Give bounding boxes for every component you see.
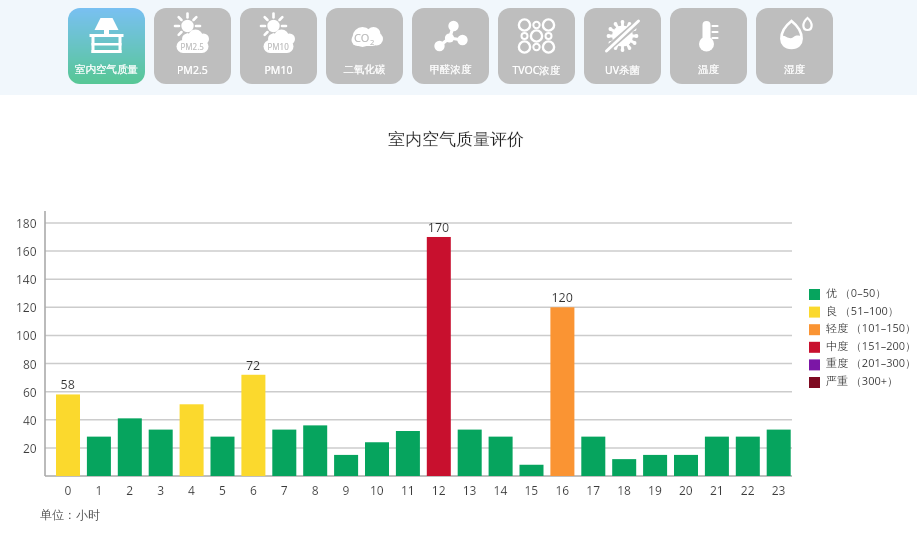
button[interactable]: 湿度	[756, 8, 833, 84]
button[interactable]: 温度	[670, 8, 747, 84]
button[interactable]: 室内空气质量	[68, 8, 145, 84]
button[interactable]: 二氧化碳	[326, 8, 403, 84]
button[interactable]: UV杀菌	[584, 8, 661, 84]
button[interactable]: 甲醛浓度	[412, 8, 489, 84]
button[interactable]: TVOC浓度	[498, 8, 575, 84]
button[interactable]: PM2.5	[154, 8, 231, 84]
button[interactable]: PM10	[240, 8, 317, 84]
